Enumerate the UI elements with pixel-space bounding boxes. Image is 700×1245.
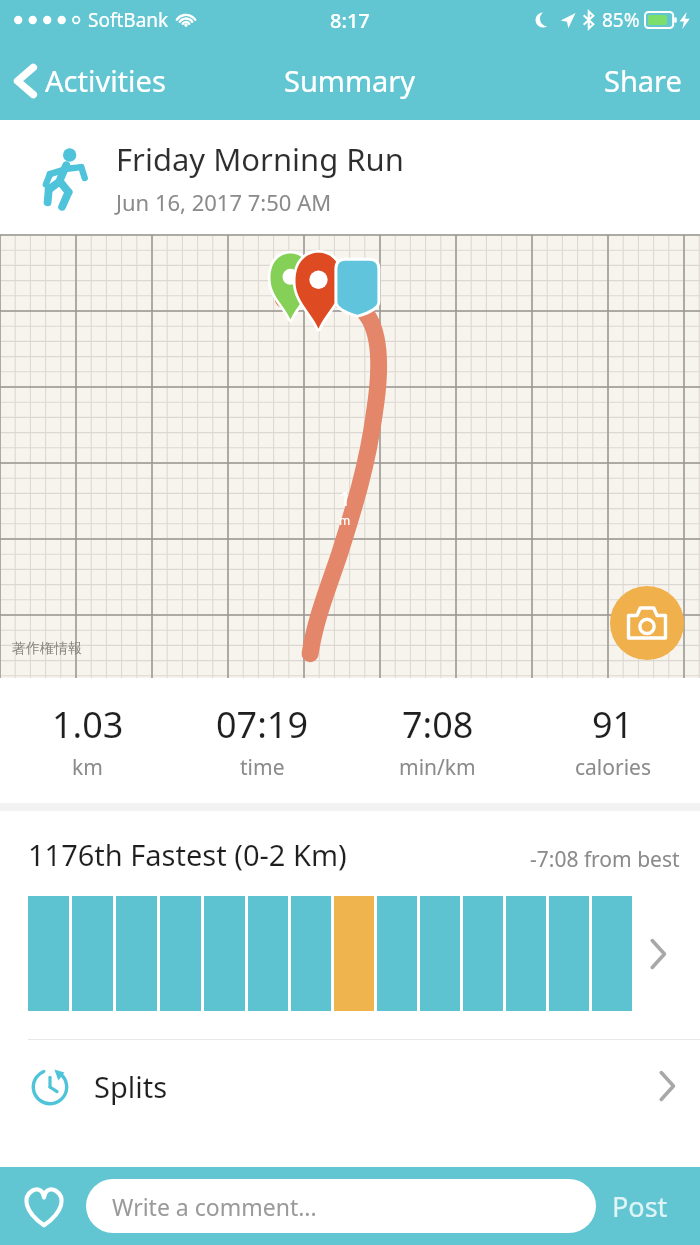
- staticText: 7:08: [402, 700, 474, 749]
- staticText: Write a comment...: [112, 1191, 317, 1222]
- staticText: Share: [604, 61, 682, 100]
- staticText: 1: [339, 485, 351, 512]
- staticText: calories: [575, 753, 651, 782]
- button[interactable]: Share: [586, 51, 700, 110]
- staticText: -7:08 from best: [530, 845, 680, 874]
- staticText: km: [72, 753, 103, 782]
- button[interactable]: Splits: [0, 1040, 700, 1132]
- button[interactable]: Like: [16, 1178, 72, 1234]
- staticText: SoftBank: [88, 7, 169, 33]
- staticText: Summary: [284, 61, 416, 100]
- button[interactable]: Add photo: [610, 586, 684, 660]
- button[interactable]: Post: [596, 1178, 684, 1235]
- button[interactable]: 1176th Fastest (0-2 Km): [0, 811, 700, 1039]
- staticText: Jun 16, 2017 7:50 AM: [116, 187, 332, 217]
- staticText: 07:19: [216, 700, 309, 749]
- button[interactable]: Activities: [0, 53, 178, 108]
- button[interactable]: Write a comment...: [86, 1179, 596, 1233]
- staticText: 1.03: [52, 700, 124, 749]
- staticText: 1176th Fastest (0-2 Km): [28, 835, 347, 874]
- staticText: 85%: [602, 7, 640, 33]
- staticText: Splits: [94, 1067, 168, 1106]
- staticText: 8:17: [330, 7, 370, 34]
- staticText: Post: [612, 1188, 668, 1225]
- staticText: 91: [592, 700, 634, 749]
- staticText: min/km: [399, 753, 476, 782]
- staticText: time: [240, 753, 285, 782]
- staticText: Activities: [45, 61, 166, 100]
- staticText: 著作権情報: [12, 640, 82, 658]
- staticText: Friday Morning Run: [116, 138, 404, 180]
- staticText: m: [339, 512, 351, 528]
